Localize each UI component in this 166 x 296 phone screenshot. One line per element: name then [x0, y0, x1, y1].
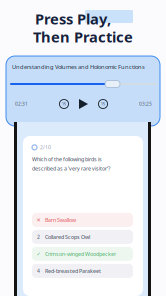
staticText: Which of the following birds is — [32, 156, 102, 163]
button[interactable]: ✕ — [32, 213, 133, 227]
staticText: 2/10 — [40, 144, 51, 151]
button[interactable]: Skip back 15 seconds — [59, 99, 69, 109]
staticText: Collared Scops Owl — [45, 233, 90, 240]
staticText: ✓ — [36, 251, 40, 257]
staticText: described as a 'very rare visitor'? — [32, 165, 110, 172]
staticText: 15 — [62, 102, 66, 106]
staticText: ✕ — [36, 217, 40, 223]
staticText: Crimson-winged Woodpecker — [45, 250, 116, 257]
staticText: Barn Swallow — [45, 216, 76, 223]
button[interactable]: Skip forward 15 seconds — [98, 99, 108, 109]
staticText: Understanding Volumes and Holonomic Func… — [12, 63, 145, 71]
staticText: 15 — [101, 102, 105, 106]
button[interactable]: ✓ — [32, 247, 133, 261]
staticText: Press Play, — [35, 9, 111, 28]
button[interactable]: Play — [79, 99, 88, 109]
staticText: Then Practice — [33, 27, 133, 46]
button[interactable]: 4 — [32, 264, 133, 278]
staticText: 4 — [37, 267, 40, 274]
staticText: 02:31 — [15, 101, 28, 107]
staticText: Red-breasted Parakeet — [45, 267, 101, 274]
button[interactable]: 2 — [32, 230, 133, 244]
staticText: 03:25 — [139, 101, 152, 107]
staticText: 2 — [37, 233, 40, 240]
